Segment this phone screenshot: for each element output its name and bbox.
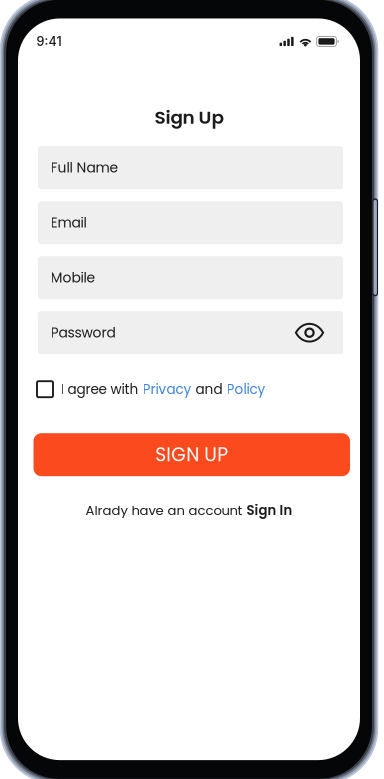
staticText: Sign In <box>246 501 292 520</box>
button[interactable]: I agree with <box>18 379 360 399</box>
button[interactable]: Alrady have an account <box>85 501 292 520</box>
staticText: Full Name <box>50 158 118 177</box>
staticText: Alrady have an account <box>85 501 246 520</box>
staticText: I agree with <box>60 380 142 399</box>
staticText: 9:41 <box>36 34 61 49</box>
staticText: Email <box>50 213 86 232</box>
staticText: and <box>191 380 226 399</box>
staticText: Mobile <box>50 268 95 287</box>
staticText: Password <box>50 323 115 342</box>
staticText: SIGN UP <box>155 442 228 468</box>
staticText: Policy <box>226 380 265 399</box>
button[interactable]: Show password <box>282 311 324 354</box>
staticText: Sign Up <box>154 104 223 130</box>
staticText: Privacy <box>142 380 191 399</box>
button[interactable]: SIGN UP <box>33 433 350 476</box>
